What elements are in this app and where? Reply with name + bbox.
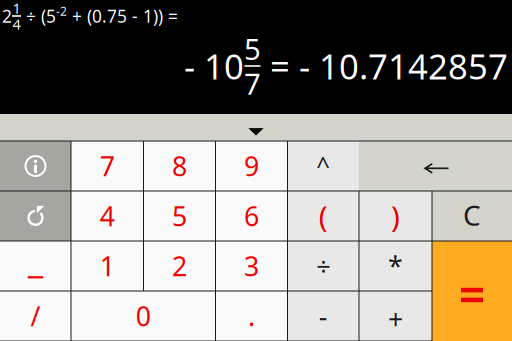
staticText: (: [319, 196, 328, 235]
button[interactable]: 9: [215, 141, 287, 191]
staticText: -: [319, 298, 328, 334]
staticText: /: [30, 298, 40, 334]
button[interactable]: (: [287, 191, 359, 241]
staticText: 1: [12, 0, 20, 18]
staticText: = - 10.7142857: [261, 43, 508, 89]
staticText: 9: [244, 148, 259, 184]
button[interactable]: 1: [71, 241, 143, 291]
button[interactable]: ): [359, 191, 432, 241]
button[interactable]: .: [215, 291, 287, 341]
staticText: ÷: [316, 249, 330, 283]
button[interactable]: Mixed number separator: [0, 241, 71, 291]
staticText: 5: [244, 29, 261, 68]
button[interactable]: 4: [71, 191, 143, 241]
staticText: 2: [2, 4, 12, 27]
staticText: 3: [244, 248, 259, 284]
staticText: +: [388, 301, 403, 337]
staticText: C: [463, 196, 481, 234]
staticText: -2: [56, 3, 67, 19]
button[interactable]: Collapse keypad: [0, 114, 512, 141]
staticText: 4: [12, 14, 20, 34]
staticText: 7: [100, 148, 115, 184]
button[interactable]: 6: [215, 191, 287, 241]
button[interactable]: ÷: [287, 241, 359, 291]
staticText: 2: [172, 248, 187, 284]
staticText: + (0.75 - 1)) =: [67, 4, 178, 27]
staticText: ): [391, 196, 400, 235]
button[interactable]: *: [359, 241, 432, 291]
button[interactable]: 8: [143, 141, 215, 191]
staticText: ÷ (5: [21, 4, 56, 27]
staticText: 0: [136, 298, 151, 334]
staticText: 6: [244, 198, 259, 234]
button[interactable]: Equals: [432, 241, 512, 341]
staticText: ^: [316, 149, 330, 181]
staticText: - 10: [184, 43, 244, 89]
button[interactable]: C: [432, 191, 512, 241]
button[interactable]: 2: [143, 241, 215, 291]
staticText: 4: [100, 198, 115, 234]
staticText: .: [248, 298, 255, 334]
staticText: 5: [172, 198, 187, 234]
button[interactable]: 3: [215, 241, 287, 291]
staticText: 7: [244, 64, 261, 103]
staticText: 1: [100, 248, 115, 284]
button[interactable]: 7: [71, 141, 143, 191]
button[interactable]: ^: [287, 141, 359, 191]
button[interactable]: 5: [143, 191, 215, 241]
button[interactable]: Undo: [0, 191, 71, 241]
button[interactable]: Backspace: [359, 141, 512, 191]
staticText: *: [388, 248, 403, 283]
button[interactable]: /: [0, 291, 71, 341]
button[interactable]: -: [287, 291, 359, 341]
staticText: 8: [172, 148, 187, 184]
button[interactable]: Info: [0, 141, 71, 191]
button[interactable]: 0: [71, 291, 215, 341]
button[interactable]: +: [359, 291, 432, 341]
